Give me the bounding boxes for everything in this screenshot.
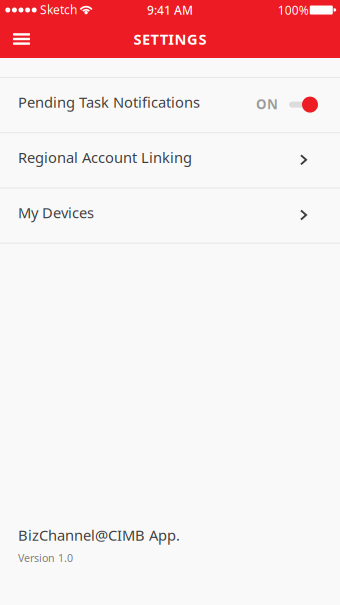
staticText: My Devices — [18, 203, 94, 222]
button[interactable]: Menu — [0, 20, 43, 58]
staticText: ON — [256, 95, 278, 113]
staticText: Regional Account Linking — [18, 148, 192, 167]
staticText: Sketch — [40, 1, 77, 17]
staticText: 9:41 AM — [147, 2, 193, 18]
staticText: Pending Task Notifications — [18, 92, 200, 112]
staticText: 100% — [278, 2, 309, 18]
button[interactable]: Regional Account Linking — [0, 132, 340, 187]
staticText: BizChannel@CIMB App. — [18, 525, 180, 545]
staticText: Version 1.0 — [18, 551, 73, 565]
staticText: SETTINGS — [134, 29, 206, 49]
button[interactable]: My Devices — [0, 187, 340, 243]
button[interactable]: Pending Task Notifications — [0, 77, 340, 132]
